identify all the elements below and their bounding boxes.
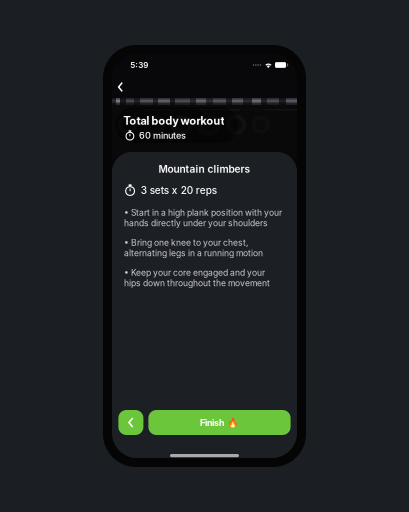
staticText: 5:39 — [130, 60, 148, 70]
staticText: • Keep your core engaged and your hips d… — [124, 267, 270, 288]
staticText: Total body workout — [123, 114, 224, 128]
staticText: 🔥 — [227, 417, 239, 428]
button[interactable]: Finish — [148, 410, 291, 435]
staticText: • Start in a high plank position with yo… — [124, 207, 282, 228]
button[interactable]: Back — [110, 77, 130, 97]
staticText: Finish — [200, 417, 224, 428]
staticText: 60 minutes — [139, 130, 186, 141]
staticText: • Bring one knee to your chest, alternat… — [124, 237, 263, 258]
staticText: Mountain climbers — [158, 163, 250, 175]
button[interactable]: Previous exercise — [118, 410, 143, 435]
staticText: 3 sets x 20 reps — [141, 184, 217, 196]
